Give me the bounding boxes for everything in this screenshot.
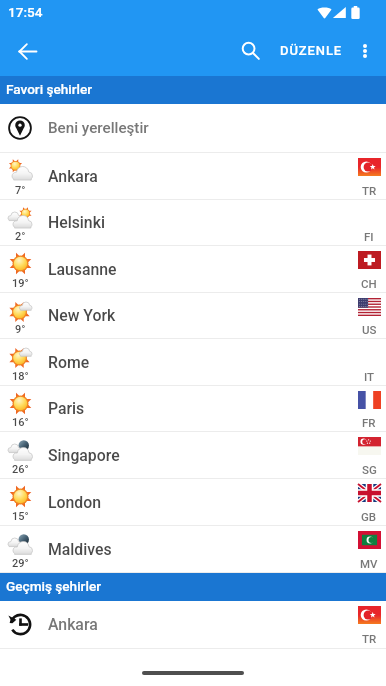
button[interactable]: 29°	[0, 526, 386, 572]
staticText: Ankara	[48, 615, 352, 634]
button[interactable]: 16°	[0, 386, 386, 431]
button[interactable]: 7°	[0, 153, 386, 199]
button[interactable]: Beni yerelleştir	[0, 104, 386, 152]
staticText: 9°	[15, 323, 26, 336]
staticText: IT	[364, 370, 375, 383]
button[interactable]: 18°	[0, 339, 386, 385]
staticText: 29°	[12, 557, 29, 570]
button[interactable]: 9°	[0, 293, 386, 338]
staticText: TR	[362, 184, 377, 197]
button[interactable]: 2°	[0, 200, 386, 245]
staticText: 19°	[12, 277, 29, 290]
staticText: 18°	[12, 370, 29, 383]
staticText: Geçmiş şehirler	[6, 578, 101, 594]
staticText: Paris	[48, 399, 352, 418]
staticText: Maldives	[48, 540, 352, 559]
staticText: MV	[360, 557, 378, 570]
staticText: DÜZENLE	[280, 43, 343, 58]
button[interactable]: DÜZENLE	[274, 35, 349, 66]
button[interactable]: Search	[232, 32, 269, 69]
staticText: 16°	[12, 416, 29, 429]
staticText: TR	[362, 632, 377, 645]
staticText: FI	[364, 230, 374, 243]
staticText: Beni yerelleştir	[48, 119, 149, 137]
staticText: Singapore	[48, 446, 352, 465]
staticText: London	[48, 493, 352, 512]
button[interactable]: 15°	[0, 479, 386, 525]
staticText: Favori şehirler	[6, 81, 93, 97]
staticText: 15°	[12, 510, 29, 523]
button[interactable]: 26°	[0, 432, 386, 478]
staticText: SG	[362, 463, 377, 476]
staticText: 26°	[12, 463, 29, 476]
staticText: Ankara	[48, 167, 352, 186]
staticText: CH	[361, 277, 377, 290]
staticText: 2°	[15, 230, 26, 243]
staticText: GB	[361, 510, 377, 523]
staticText: 7°	[15, 184, 26, 197]
button[interactable]: Back	[9, 33, 45, 69]
button[interactable]: Ankara	[0, 601, 386, 648]
staticText: US	[362, 323, 377, 336]
staticText: 17:54	[8, 4, 43, 20]
staticText: Helsinki	[48, 213, 352, 232]
staticText: New York	[48, 306, 352, 325]
staticText: Lausanne	[48, 260, 352, 279]
staticText: FR	[362, 416, 376, 429]
button[interactable]: More options	[349, 35, 380, 66]
button[interactable]: 19°	[0, 246, 386, 292]
staticText: Rome	[48, 353, 352, 372]
